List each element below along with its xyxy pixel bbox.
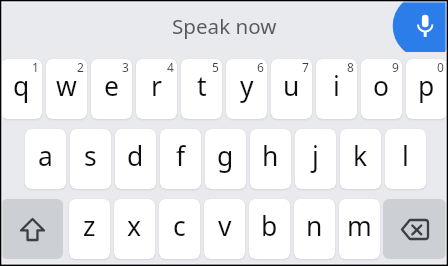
staticText: h <box>262 138 279 174</box>
staticText: r <box>151 68 162 104</box>
staticText: s <box>84 138 97 174</box>
button[interactable]: j <box>295 129 336 189</box>
staticText: 1 <box>32 59 39 75</box>
button[interactable]: Shift <box>1 199 63 259</box>
button[interactable]: q <box>1 59 42 119</box>
staticText: 7 <box>302 59 309 75</box>
button[interactable]: p <box>406 59 447 119</box>
button[interactable]: k <box>340 129 381 189</box>
staticText: e <box>104 68 119 104</box>
staticText: n <box>306 208 323 244</box>
staticText: 8 <box>347 59 354 75</box>
staticText: q <box>13 68 30 104</box>
button[interactable]: g <box>205 129 246 189</box>
staticText: 4 <box>167 59 174 75</box>
button[interactable]: z <box>69 199 110 259</box>
staticText: t <box>197 68 207 104</box>
staticText: y <box>240 68 254 104</box>
button[interactable]: h <box>250 129 291 189</box>
button[interactable]: o <box>361 59 402 119</box>
staticText: o <box>373 68 390 104</box>
button[interactable]: w <box>46 59 87 119</box>
button[interactable]: n <box>294 199 335 259</box>
staticText: c <box>173 208 186 244</box>
staticText: z <box>83 208 96 244</box>
staticText: 2 <box>77 59 84 75</box>
button[interactable]: v <box>204 199 245 259</box>
staticText: i <box>333 68 340 104</box>
button[interactable]: Backspace <box>383 199 446 259</box>
staticText: k <box>353 138 368 174</box>
staticText: g <box>217 138 234 174</box>
staticText: b <box>261 208 278 244</box>
staticText: p <box>418 68 435 104</box>
button[interactable]: Voice input <box>0 0 448 52</box>
staticText: Speak now <box>172 12 277 40</box>
staticText: a <box>38 138 53 174</box>
button[interactable]: i <box>316 59 357 119</box>
staticText: f <box>176 138 186 174</box>
staticText: w <box>56 68 77 104</box>
button[interactable]: f <box>160 129 201 189</box>
button[interactable]: x <box>114 199 155 259</box>
staticText: 5 <box>212 59 219 75</box>
button[interactable]: d <box>115 129 156 189</box>
button[interactable]: u <box>271 59 312 119</box>
staticText: l <box>402 138 409 174</box>
button[interactable]: m <box>339 199 380 259</box>
staticText: d <box>127 138 144 174</box>
staticText: v <box>218 208 232 244</box>
button[interactable]: a <box>25 129 66 189</box>
button[interactable]: s <box>70 129 111 189</box>
button[interactable]: c <box>159 199 200 259</box>
staticText: 9 <box>392 59 399 75</box>
staticText: 6 <box>257 59 264 75</box>
staticText: u <box>283 68 300 104</box>
button[interactable]: b <box>249 199 290 259</box>
staticText: 0 <box>437 59 444 75</box>
button[interactable]: r <box>136 59 177 119</box>
button[interactable]: t <box>181 59 222 119</box>
staticText: x <box>127 208 142 244</box>
staticText: 3 <box>122 59 129 75</box>
staticText: m <box>347 208 372 244</box>
button[interactable]: y <box>226 59 267 119</box>
button[interactable]: e <box>91 59 132 119</box>
staticText: j <box>312 138 319 174</box>
button[interactable]: l <box>385 129 426 189</box>
